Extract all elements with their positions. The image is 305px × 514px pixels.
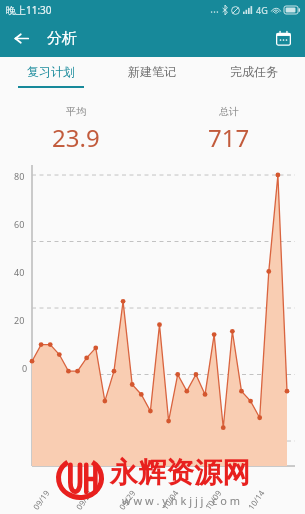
button[interactable]: Back [4, 21, 38, 55]
staticText: 40 [14, 266, 25, 278]
staticText: 23.9 [52, 121, 100, 154]
button[interactable]: 平均 [0, 95, 152, 163]
staticText: 总计 [219, 105, 239, 118]
staticText: 完成任务 [230, 64, 278, 79]
button[interactable]: 完成任务 [203, 57, 305, 95]
staticText: 4G [256, 4, 268, 16]
button[interactable]: 新建笔记 [101, 57, 203, 95]
staticText: 晚上11:30 [6, 3, 52, 17]
staticText: 20 [14, 314, 25, 326]
staticText: 复习计划 [27, 64, 75, 79]
staticText: 平均 [66, 105, 86, 118]
staticText: 10/04 [159, 487, 181, 512]
button[interactable]: 复习计划 [0, 57, 101, 95]
button[interactable]: Calendar [267, 22, 299, 54]
staticText: 0 [22, 362, 28, 374]
staticText: 60 [14, 218, 25, 230]
staticText: 09/19 [30, 487, 52, 512]
staticText: w w w . y h k j j j . c o m [122, 493, 241, 508]
staticText: 09/24 [73, 487, 95, 512]
staticText: 10/09 [202, 487, 224, 512]
staticText: 新建笔记 [128, 64, 176, 79]
staticText: 分析 [47, 29, 77, 48]
staticText: 717 [208, 121, 250, 154]
button[interactable]: 总计 [152, 95, 305, 163]
staticText: 10/14 [245, 487, 267, 512]
staticText: 09/29 [116, 487, 138, 512]
staticText: 永辉资源网 [110, 455, 250, 490]
staticText: 80 [14, 170, 25, 182]
